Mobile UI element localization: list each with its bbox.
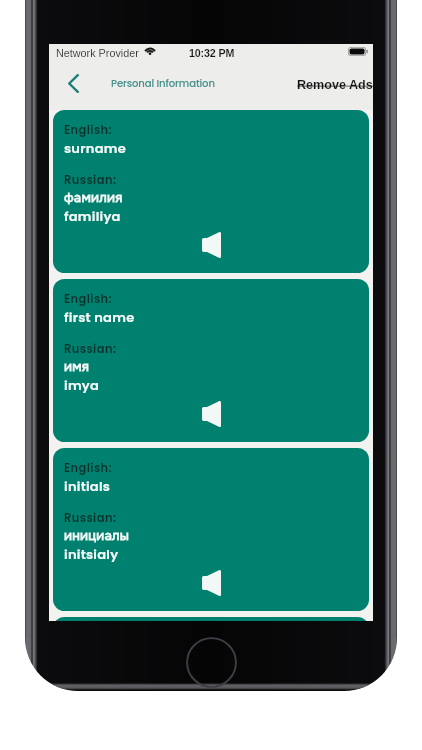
staticText: фамилия [64, 189, 123, 206]
staticText: initials [64, 477, 111, 495]
staticText: Remove Ads [297, 78, 373, 92]
staticText: imya [64, 376, 100, 394]
staticText: 10:32 PM [189, 47, 235, 59]
staticText: имя [64, 358, 90, 375]
button[interactable]: English: [53, 617, 369, 621]
button[interactable]: English: [53, 448, 369, 611]
staticText: English: [64, 122, 113, 138]
staticText: Network Provider [56, 47, 139, 59]
button[interactable]: Back [54, 66, 93, 110]
staticText: Personal Information [111, 76, 215, 90]
staticText: Russian: [64, 510, 117, 526]
staticText: initsialy [64, 545, 119, 563]
staticText: инициалы [64, 527, 130, 544]
staticText: English: [64, 291, 113, 307]
staticText: familiya [64, 207, 121, 225]
staticText: Russian: [64, 172, 117, 188]
staticText: surname [64, 139, 127, 157]
button[interactable]: Play pronunciation of initials [202, 570, 221, 596]
staticText: first name [64, 308, 135, 326]
button[interactable]: English: [53, 110, 369, 273]
button[interactable]: Remove Ads [293, 76, 373, 99]
staticText: English: [64, 460, 113, 476]
staticText: Russian: [64, 341, 117, 357]
button[interactable]: English: [53, 279, 369, 442]
button[interactable]: Play pronunciation of surname [202, 232, 221, 258]
button[interactable]: Play pronunciation of first name [202, 401, 221, 427]
